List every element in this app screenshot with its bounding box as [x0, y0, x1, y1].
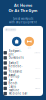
staticText: Equipment	[8, 29, 15, 30]
button[interactable]: Gym	[25, 37, 34, 49]
staticText: Great workouts	[13, 17, 33, 20]
button[interactable]: Dumbbells	[3, 55, 40, 60]
button[interactable]: Cable machine	[3, 86, 40, 91]
staticText: Medicine ball	[9, 92, 28, 95]
button[interactable]: Home	[12, 37, 21, 49]
staticText: 5 moves	[34, 77, 40, 79]
button[interactable]: Equipment	[4, 28, 16, 31]
staticText: Bodyweight	[9, 49, 22, 56]
button[interactable]: Bench	[3, 81, 40, 86]
button[interactable]: Kettlebell	[3, 65, 40, 71]
staticText: Kettlebell	[9, 64, 23, 72]
staticText: Home	[15, 47, 19, 49]
staticText: Resistance band	[9, 70, 23, 77]
staticText: with any equipment	[9, 21, 37, 24]
staticText: 8 moves	[34, 67, 40, 69]
button[interactable]: Resistance band	[3, 71, 40, 76]
staticText: 9 moves	[34, 87, 40, 89]
staticText: Barbell	[9, 61, 19, 65]
button[interactable]: Medicine ball	[3, 91, 40, 96]
button[interactable]: Barbell	[3, 60, 40, 65]
staticText: Cable machine	[9, 85, 20, 92]
staticText: 12 moves	[33, 52, 40, 54]
button[interactable]: Bodyweight	[3, 50, 40, 55]
staticText: Bench	[9, 82, 18, 85]
staticText: At Home	[14, 3, 32, 8]
staticText: Dumbbells	[9, 56, 24, 60]
staticText: Pull-up bar	[9, 75, 20, 82]
staticText: Or At The Gym	[8, 8, 37, 13]
button[interactable]: Pull-up bar	[3, 76, 40, 81]
